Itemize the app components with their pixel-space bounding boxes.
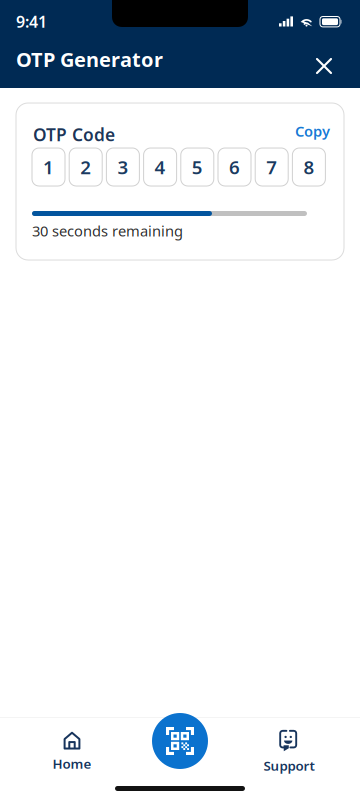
staticText: 9:41 [16, 11, 47, 32]
button[interactable]: Copy [286, 122, 330, 140]
staticText: 6 [229, 155, 240, 179]
staticText: 3 [117, 155, 128, 179]
staticText: OTP Generator [16, 46, 163, 73]
staticText: 7 [266, 155, 277, 179]
staticText: Copy [295, 121, 330, 141]
staticText: 1 [43, 155, 54, 179]
staticText: 4 [155, 155, 166, 179]
button[interactable]: Home [24, 726, 120, 778]
staticText: Support [263, 757, 314, 774]
staticText: 5 [192, 155, 203, 179]
staticText: 30 seconds remaining [32, 221, 183, 240]
button[interactable]: Scan QR code [152, 713, 208, 769]
staticText: 2 [80, 155, 91, 179]
staticText: OTP Code [33, 123, 115, 146]
button[interactable]: Close [306, 50, 342, 82]
staticText: 8 [303, 155, 314, 179]
staticText: Home [52, 755, 91, 772]
button[interactable]: Support [241, 726, 337, 778]
